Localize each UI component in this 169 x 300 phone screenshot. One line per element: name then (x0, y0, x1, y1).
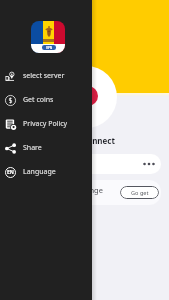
staticText: Go get (131, 189, 149, 197)
staticText: change (77, 185, 103, 195)
button[interactable]: Connect (78, 86, 98, 106)
staticText: Get coins (23, 95, 54, 105)
button[interactable]: Get coins (0, 88, 92, 112)
staticText: VPN (46, 46, 53, 50)
button[interactable]: select server (0, 64, 92, 88)
button[interactable]: Privacy Policy (0, 112, 92, 136)
staticText: Connect (82, 135, 115, 146)
staticText: EN (7, 169, 14, 176)
button[interactable]: Go get (120, 186, 159, 199)
button[interactable]: Share (0, 136, 92, 160)
button[interactable]: EN (0, 160, 92, 184)
button[interactable]: More options (40, 154, 161, 174)
other: More options (142, 154, 156, 174)
staticText: Language (23, 167, 56, 177)
staticText: select server (23, 71, 65, 81)
staticText: Share (23, 143, 42, 153)
staticText: Privacy Policy (23, 119, 68, 129)
